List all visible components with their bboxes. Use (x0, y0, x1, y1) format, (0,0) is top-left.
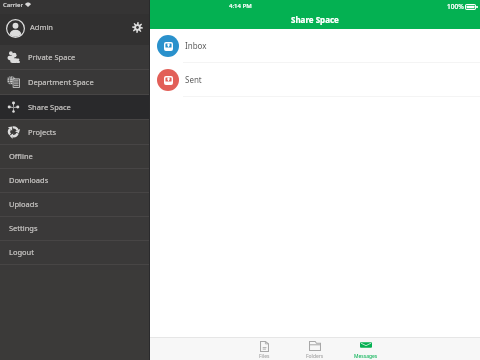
staticText: 4:14 PM (229, 2, 252, 10)
button[interactable]: Admin (0, 14, 150, 45)
staticText: Folders (306, 353, 324, 360)
staticText: Share Space (28, 102, 71, 112)
staticText: Carrier (3, 1, 23, 9)
button[interactable]: Department Space (0, 70, 150, 95)
staticText: Private Space (28, 52, 76, 62)
staticText: Downloads (9, 175, 49, 185)
staticText: Logout (9, 247, 34, 257)
button[interactable]: Logout (0, 241, 150, 265)
staticText: Sent (185, 74, 202, 85)
staticText: Settings (9, 223, 38, 233)
staticText: Offline (9, 151, 33, 161)
staticText: 100% (447, 2, 464, 11)
button[interactable]: Folders (295, 338, 335, 360)
staticText: Messages (354, 353, 378, 360)
staticText: Files (259, 353, 270, 360)
button[interactable]: Files (244, 338, 284, 360)
button[interactable]: Settings (0, 217, 150, 241)
staticText: Inbox (185, 40, 207, 51)
button[interactable]: Uploads (0, 193, 150, 217)
button[interactable]: Downloads (0, 169, 150, 193)
button[interactable]: Inbox (150, 29, 480, 63)
button[interactable]: Offline (0, 145, 150, 169)
button[interactable]: Projects (0, 120, 150, 145)
staticText: Share Space (291, 14, 339, 25)
staticText: Admin (30, 22, 53, 32)
staticText: Uploads (9, 199, 38, 209)
button[interactable]: Private Space (0, 45, 150, 70)
staticText: Department Space (28, 77, 94, 87)
staticText: Projects (28, 127, 57, 137)
button[interactable]: Settings (132, 22, 143, 33)
button[interactable]: Share Space (0, 95, 150, 120)
button[interactable]: Sent (150, 63, 480, 97)
button[interactable]: Messages (346, 338, 386, 360)
